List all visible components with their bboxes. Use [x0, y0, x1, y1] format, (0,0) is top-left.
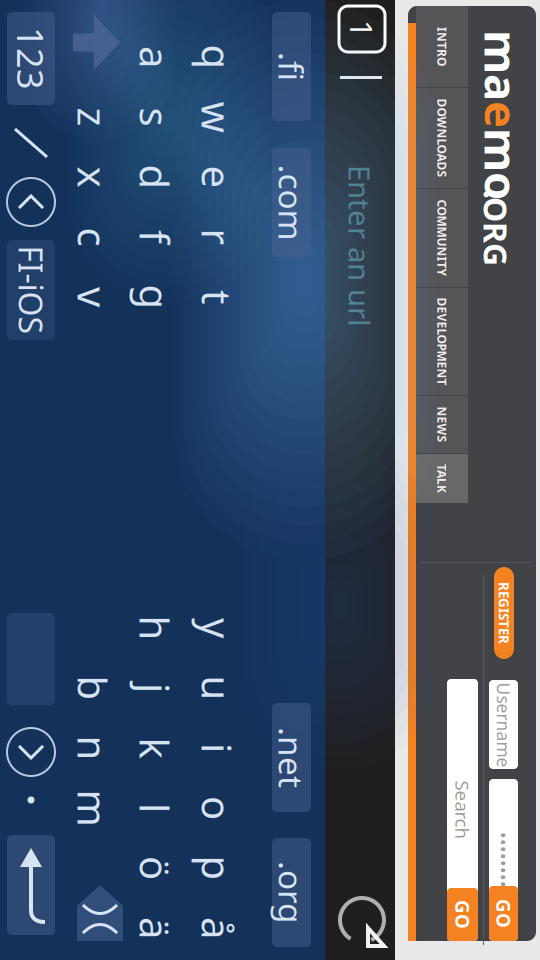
staticText: v: [77, 630, 97, 683]
staticText: .ORG: [0, 233, 56, 275]
staticText: REGISTER: [372, 237, 434, 255]
staticText: n: [525, 630, 540, 683]
button[interactable]: REGISTER: [357, 236, 449, 256]
staticText: COMMUNITY: [0, 300, 66, 316]
button[interactable]: TALK: [244, 282, 293, 334]
staticText: DEVELOPMENT: [87, 300, 175, 316]
staticText: y: [408, 506, 428, 559]
staticText: i: [533, 506, 540, 559]
button[interactable]: NEWS: [186, 282, 243, 334]
staticText: FI-iOS: [35, 698, 124, 740]
button[interactable]: .net: [493, 439, 540, 478]
button[interactable]: Space: [403, 695, 495, 743]
button[interactable]: COMMUNITY: [0, 282, 77, 334]
staticText: TALK: [254, 300, 283, 316]
staticText: f: [20, 568, 34, 621]
staticText: .net: [517, 436, 540, 481]
staticText: k: [527, 568, 540, 621]
button[interactable]: FI-iOS: [30, 695, 130, 743]
staticText: b: [465, 630, 490, 683]
button[interactable]: Next: [518, 695, 540, 743]
button[interactable]: Previous: [0, 695, 16, 743]
staticText: NEWS: [196, 300, 232, 316]
staticText: h: [405, 568, 430, 621]
button[interactable]: DEVELOPMENT: [78, 282, 185, 334]
staticText: Username: [472, 235, 540, 258]
